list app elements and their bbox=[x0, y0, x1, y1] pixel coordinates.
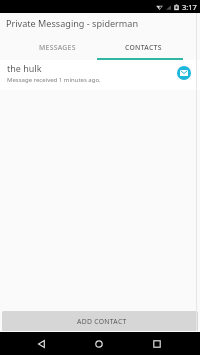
button[interactable]: Home bbox=[88, 333, 110, 355]
staticText: the hulk bbox=[7, 62, 42, 74]
staticText: Private Messaging - spiderman bbox=[6, 17, 139, 29]
button[interactable]: the hulk bbox=[0, 60, 200, 90]
staticText: 3:17 bbox=[182, 2, 197, 12]
button[interactable]: CONTACTS bbox=[100, 36, 187, 58]
staticText: Message received 1 minutes ago. bbox=[7, 76, 101, 84]
staticText: ADD CONTACT bbox=[77, 317, 127, 326]
staticText: CONTACTS bbox=[125, 43, 162, 52]
button[interactable]: ADD CONTACT bbox=[2, 311, 198, 331]
button[interactable]: Back bbox=[30, 333, 52, 355]
button[interactable]: Send message bbox=[177, 66, 191, 80]
button[interactable]: MESSAGES bbox=[14, 36, 100, 58]
button[interactable]: Recents bbox=[146, 333, 168, 355]
staticText: MESSAGES bbox=[39, 43, 76, 52]
